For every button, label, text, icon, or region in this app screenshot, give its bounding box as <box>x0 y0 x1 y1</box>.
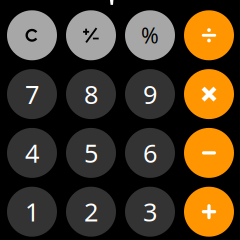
button[interactable]: Multiply <box>184 69 234 119</box>
button[interactable]: 1 <box>7 187 57 237</box>
staticText: 8 <box>84 77 98 111</box>
button[interactable]: Add <box>184 187 234 237</box>
staticText: 9 <box>143 77 157 111</box>
button[interactable]: 8 <box>66 69 116 119</box>
button[interactable]: 2 <box>66 187 116 237</box>
button[interactable]: Toggle sign <box>66 10 116 60</box>
staticText: 6 <box>143 136 157 170</box>
staticText: 7 <box>25 77 39 111</box>
staticText: 5 <box>84 136 98 170</box>
button[interactable]: 4 <box>7 128 57 178</box>
button[interactable]: 9 <box>125 69 175 119</box>
button[interactable]: Clear <box>7 10 57 60</box>
staticText: 1 <box>25 195 39 228</box>
button[interactable]: 6 <box>125 128 175 178</box>
button[interactable]: Divide <box>184 10 234 60</box>
button[interactable]: % <box>125 10 175 60</box>
staticText: 4 <box>25 136 39 170</box>
staticText: 2 <box>84 195 98 228</box>
staticText: 3 <box>143 195 157 228</box>
staticText: % <box>141 21 159 49</box>
button[interactable]: 3 <box>125 187 175 237</box>
button[interactable]: 5 <box>66 128 116 178</box>
button[interactable]: Subtract <box>184 128 234 178</box>
button[interactable]: 7 <box>7 69 57 119</box>
